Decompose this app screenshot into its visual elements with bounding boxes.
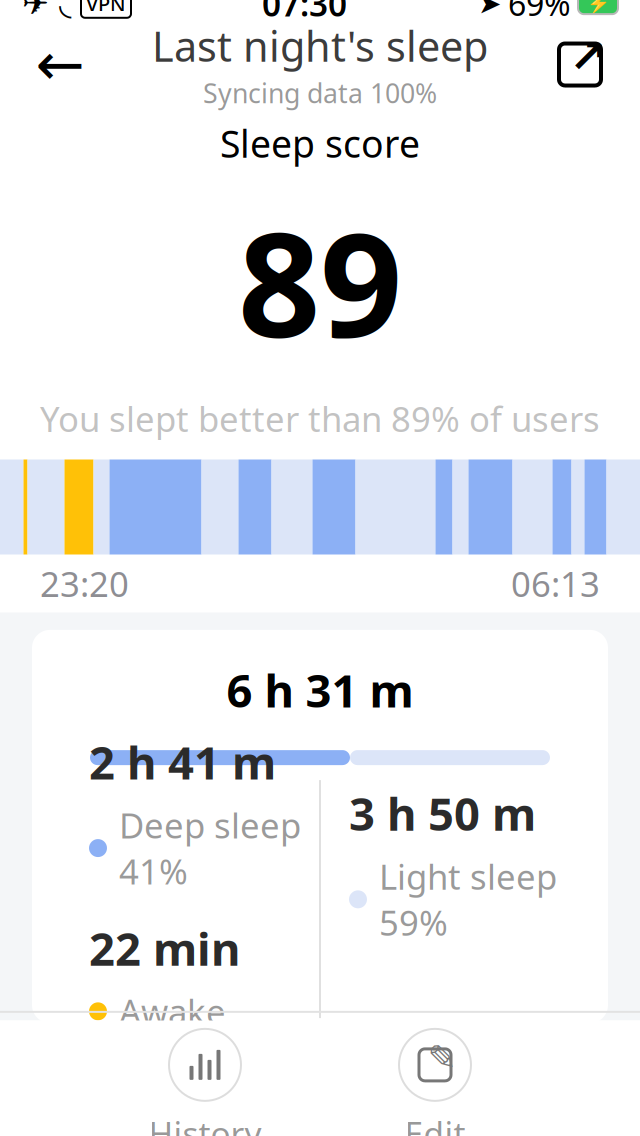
staticText: You slept better than 89% of users (40, 395, 600, 441)
staticText: Syncing data 100% (203, 75, 437, 111)
staticText: Deep sleep 41% (119, 802, 301, 894)
staticText: 3 h 50 m (349, 783, 536, 843)
staticText: 2 h 41 m (89, 732, 276, 792)
staticText: ✎ (427, 1038, 456, 1077)
staticText: ◟ (59, 0, 71, 22)
staticText: Light sleep 59% (379, 853, 557, 945)
staticText: 23:20 (40, 560, 129, 606)
staticText: ➤ (478, 0, 501, 19)
staticText: Last night's sleep (152, 18, 488, 73)
staticText: Edit (404, 1111, 465, 1136)
staticText: History (148, 1111, 261, 1136)
staticText: Awake (119, 988, 226, 1034)
staticText: ⚡ (586, 0, 609, 14)
button[interactable]: Share (544, 28, 616, 100)
staticText: 69% (508, 0, 571, 25)
staticText: 06:13 (511, 560, 600, 606)
staticText: 07:30 (262, 0, 347, 26)
staticText: 89 (238, 186, 402, 377)
staticText: ✈ (22, 0, 49, 22)
staticText: Sleep score (220, 118, 420, 168)
staticText: 22 min (89, 918, 240, 978)
staticText: ← (35, 31, 84, 98)
staticText: VPN (86, 0, 126, 17)
button[interactable]: History (130, 1029, 280, 1136)
button[interactable]: ✎ (360, 1029, 510, 1136)
staticText: 6 h 31 m (226, 660, 413, 720)
staticText: ↗ (569, 31, 607, 82)
button[interactable]: Back (24, 28, 96, 100)
